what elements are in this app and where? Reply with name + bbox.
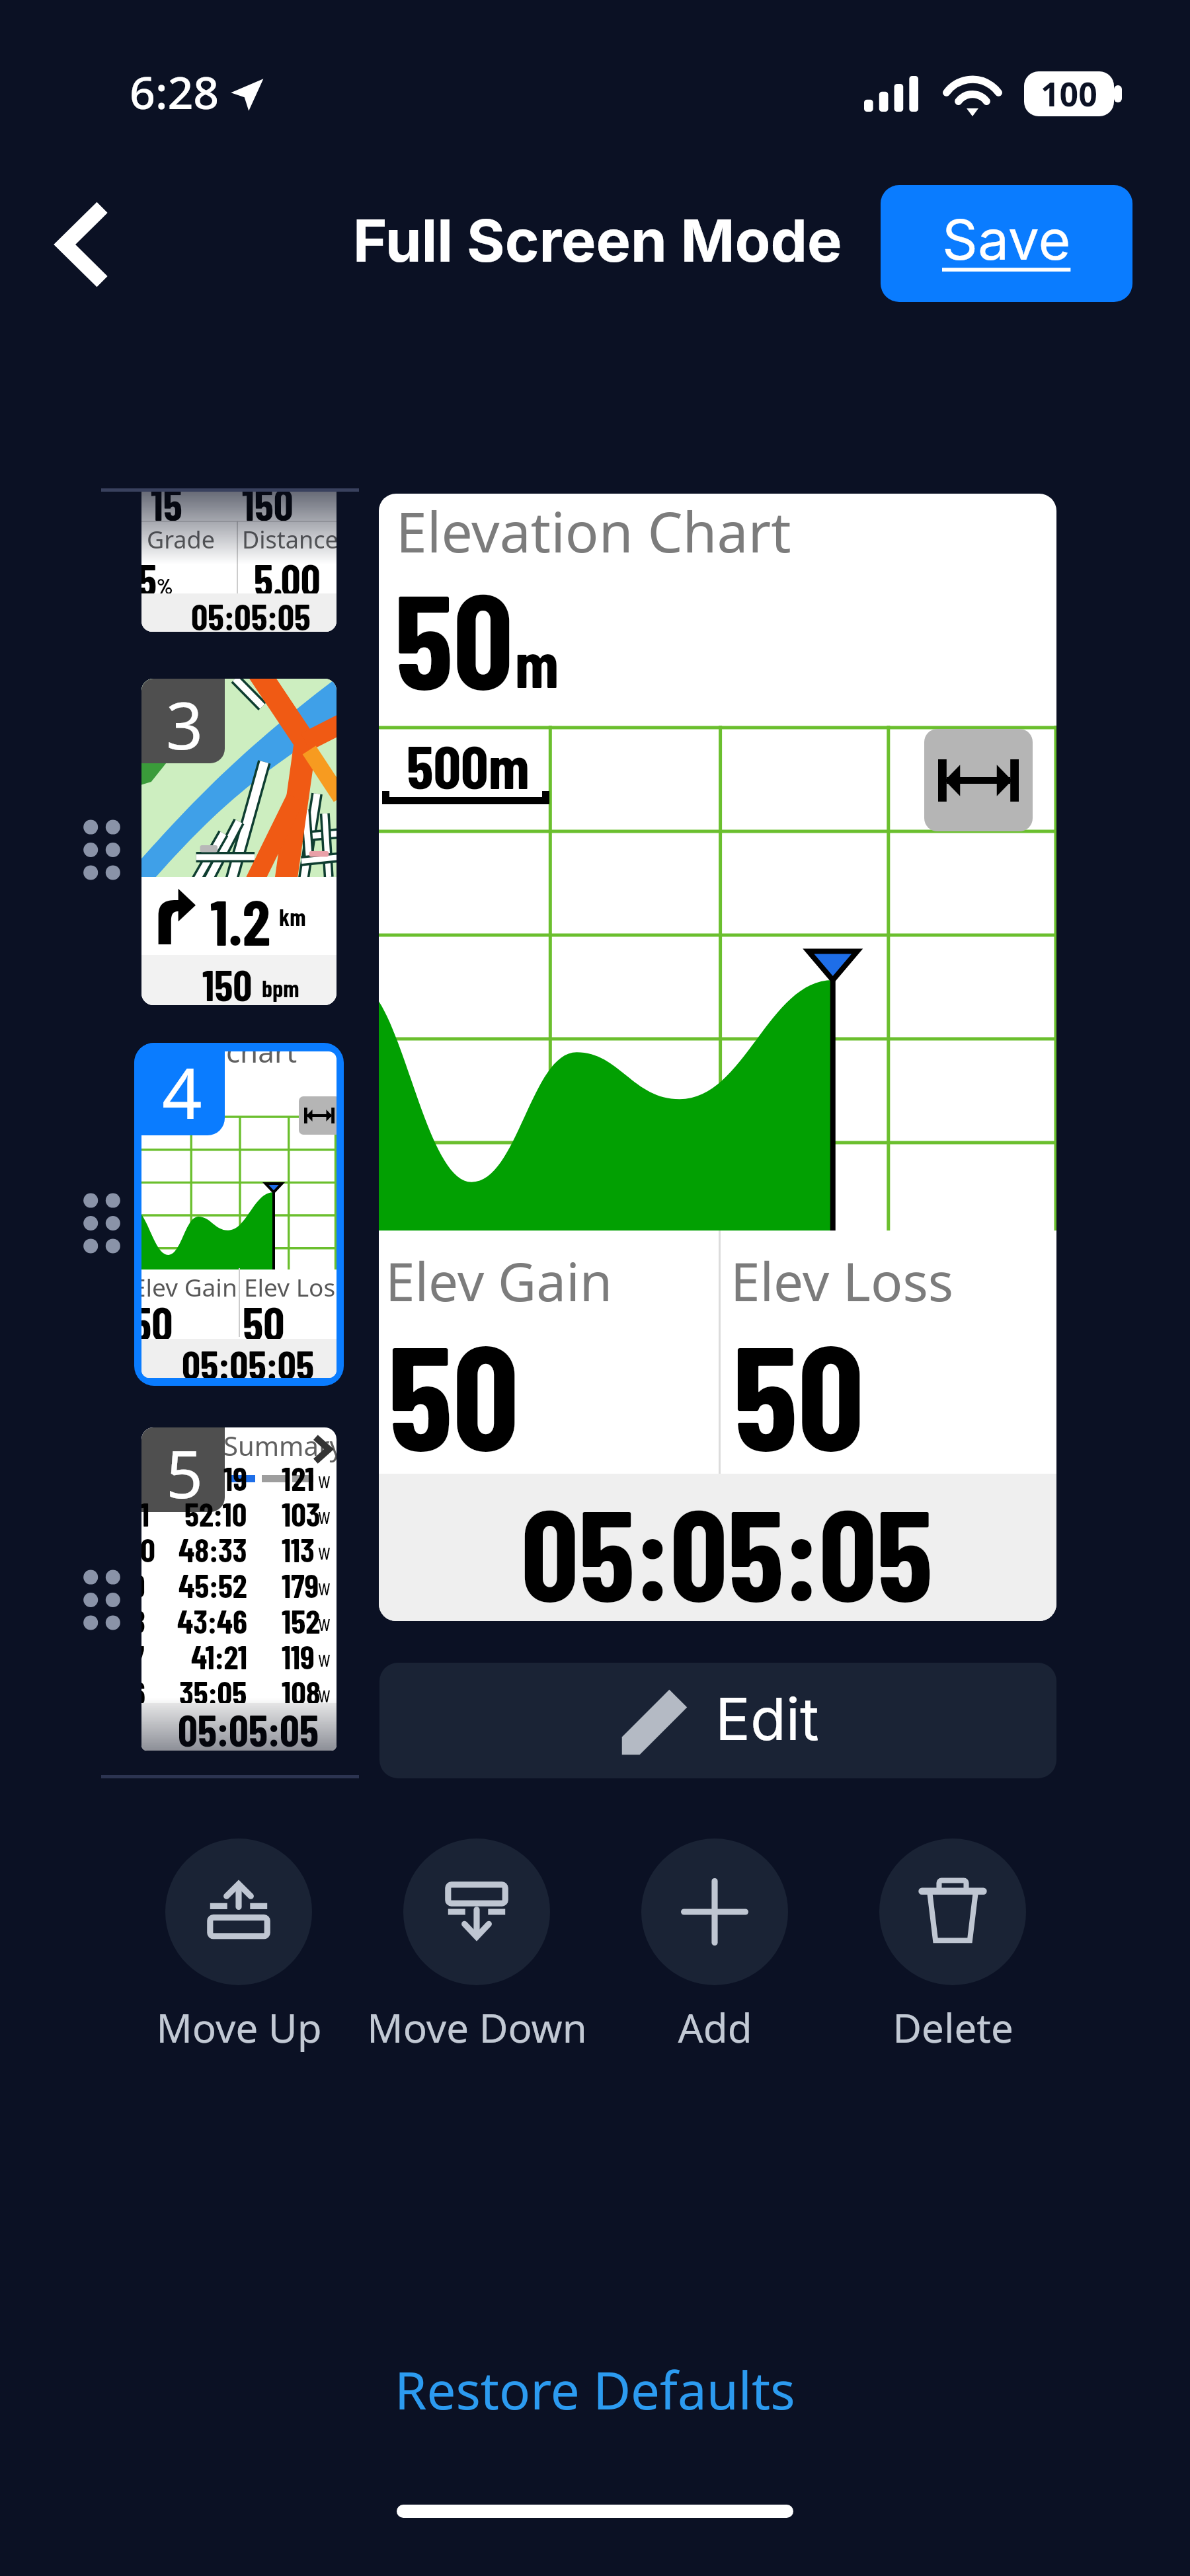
- staticText: 6: [141, 1672, 145, 1708]
- staticText: 9: [141, 1565, 145, 1601]
- staticText: w: [318, 1680, 331, 1707]
- staticText: 50: [388, 1304, 520, 1480]
- staticText: 05:05:05: [521, 1474, 933, 1621]
- button[interactable]: Summary: [141, 1427, 337, 1751]
- staticText: Add: [678, 2000, 752, 2055]
- staticText: chart: [226, 1051, 297, 1071]
- staticText: 5.00: [254, 552, 321, 605]
- staticText: 6:28: [130, 61, 219, 122]
- staticText: Save: [942, 206, 1071, 274]
- staticText: 121: [282, 1458, 315, 1494]
- staticText: 05:05:05: [182, 1339, 315, 1378]
- staticText: Edit: [715, 1684, 819, 1754]
- staticText: 05:05:05: [178, 1703, 319, 1751]
- staticText: 119: [282, 1636, 315, 1672]
- staticText: 52:10: [184, 1494, 247, 1529]
- button[interactable]: chart: [134, 1043, 344, 1386]
- button[interactable]: Edit: [379, 1663, 1056, 1778]
- staticText: 8: [141, 1601, 145, 1636]
- staticText: 43:46: [177, 1601, 247, 1636]
- staticText: 150: [242, 492, 294, 529]
- staticText: 35:05: [179, 1672, 247, 1708]
- staticText: 5: [166, 1429, 204, 1512]
- staticText: w: [318, 1573, 331, 1600]
- staticText: 48:33: [178, 1529, 247, 1565]
- staticText: w: [318, 1609, 331, 1636]
- staticText: 100: [1041, 71, 1097, 116]
- staticText: 50: [243, 1294, 285, 1350]
- staticText: w: [318, 1501, 331, 1529]
- button[interactable]: 3: [141, 679, 337, 1005]
- staticText: 5: [141, 552, 157, 605]
- staticText: 19: [223, 1458, 247, 1494]
- staticText: 50: [733, 1304, 865, 1480]
- staticText: 15: [151, 492, 182, 529]
- staticText: Elev Gain: [385, 1244, 613, 1316]
- button[interactable]: 15: [141, 492, 337, 632]
- staticText: Elev Loss: [731, 1244, 954, 1316]
- staticText: 103: [282, 1494, 321, 1529]
- button[interactable]: Reorder: [82, 1195, 122, 1252]
- staticText: 3: [166, 680, 204, 763]
- staticText: Delete: [892, 2000, 1013, 2055]
- staticText: 11: [141, 1494, 149, 1529]
- staticText: 41:21: [191, 1636, 247, 1672]
- staticText: 05:05:05: [191, 593, 311, 632]
- button[interactable]: Add: [588, 1838, 841, 2057]
- staticText: Summary: [223, 1427, 337, 1463]
- staticText: 150: [202, 959, 253, 1005]
- staticText: 50: [141, 1294, 173, 1350]
- staticText: Move Up: [156, 2000, 322, 2055]
- staticText: 108: [282, 1672, 321, 1708]
- staticText: 10: [141, 1529, 155, 1565]
- staticText: Distance: [242, 523, 337, 556]
- staticText: bpm: [262, 973, 299, 1002]
- staticText: Elevation Chart: [396, 494, 791, 568]
- staticText: %: [157, 573, 173, 598]
- staticText: 45:52: [178, 1565, 247, 1601]
- button[interactable]: Move Up: [112, 1838, 365, 2057]
- button[interactable]: Back: [41, 205, 120, 284]
- staticText: 500m: [407, 728, 530, 801]
- staticText: w: [318, 1537, 331, 1564]
- button[interactable]: Move Down: [350, 1838, 603, 2057]
- staticText: Elev Loss: [244, 1270, 337, 1303]
- staticText: km: [279, 902, 306, 930]
- staticText: m: [515, 623, 559, 701]
- staticText: 1.2: [210, 882, 270, 958]
- staticText: Move Down: [367, 2000, 587, 2055]
- staticText: 4: [162, 1044, 202, 1135]
- staticText: Elev Gain: [141, 1270, 237, 1303]
- staticText: 50: [395, 556, 514, 716]
- staticText: 113: [282, 1529, 315, 1565]
- button[interactable]: Restore Defaults: [368, 2344, 822, 2435]
- button[interactable]: Reorder: [82, 1572, 122, 1628]
- staticText: Grade: [147, 523, 215, 556]
- staticText: Full Screen Mode: [353, 206, 842, 276]
- staticText: 179: [282, 1565, 319, 1601]
- staticText: Restore Defaults: [395, 2355, 795, 2425]
- staticText: 152: [282, 1601, 321, 1636]
- staticText: w: [318, 1644, 331, 1671]
- staticText: 7: [141, 1636, 145, 1672]
- staticText: w: [318, 1466, 331, 1493]
- button[interactable]: Save: [881, 185, 1132, 302]
- button[interactable]: Delete: [826, 1838, 1079, 2057]
- button[interactable]: Reorder: [82, 821, 122, 878]
